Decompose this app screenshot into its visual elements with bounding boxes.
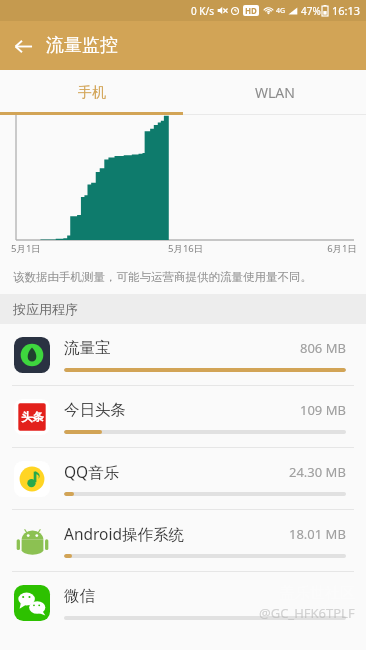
staticText: 5月16日 bbox=[168, 242, 204, 255]
staticText: WLAN bbox=[255, 83, 295, 102]
staticText: 16:13 bbox=[332, 3, 361, 18]
staticText: 0 K/s bbox=[191, 4, 215, 18]
button[interactable]: 头条 bbox=[0, 386, 366, 447]
staticText: 流量宝 bbox=[64, 338, 300, 358]
staticText: Android操作系统 bbox=[64, 523, 289, 544]
staticText: HD bbox=[245, 5, 257, 16]
staticText: 6月1日 bbox=[327, 242, 357, 255]
button[interactable]: Android操作系统 bbox=[0, 510, 366, 571]
staticText: 806 MB bbox=[300, 339, 346, 357]
staticText: 4G bbox=[276, 6, 286, 16]
button[interactable]: Back bbox=[0, 23, 46, 69]
staticText: 18.01 MB bbox=[289, 525, 346, 543]
staticText: 头条 bbox=[21, 410, 44, 424]
button[interactable]: WLAN bbox=[183, 70, 366, 115]
staticText: 手机 bbox=[78, 84, 106, 102]
button[interactable]: 微信 bbox=[0, 572, 366, 633]
button[interactable]: 手机 bbox=[0, 70, 183, 115]
staticText: 今日头条 bbox=[64, 400, 300, 420]
button[interactable]: QQ音乐 bbox=[0, 448, 366, 509]
staticText: 按应用程序 bbox=[13, 301, 78, 317]
staticText: 47% bbox=[301, 4, 321, 18]
staticText: @GC_HFK6TPLF bbox=[259, 604, 355, 622]
staticText: 微信 bbox=[64, 586, 95, 606]
staticText: 该数据由手机测量，可能与运营商提供的流量使用量不同。 bbox=[13, 270, 312, 284]
staticText: 24.30 MB bbox=[289, 463, 346, 481]
staticText: 109 MB bbox=[300, 401, 346, 419]
staticText: 5月1日 bbox=[11, 242, 41, 255]
staticText: QQ音乐 bbox=[64, 461, 289, 482]
button[interactable]: 流量宝 bbox=[0, 324, 366, 385]
staticText: 流量监控 bbox=[46, 34, 118, 57]
